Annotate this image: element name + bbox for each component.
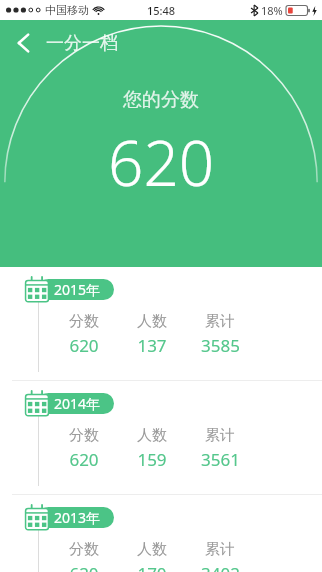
staticText: 中国移动 [45, 3, 89, 17]
staticText: 18% [261, 3, 283, 18]
staticText: 人数 [137, 540, 167, 559]
staticText: 人数 [137, 312, 167, 331]
staticText: 620 [69, 562, 99, 572]
staticText: 2013年 [54, 508, 101, 527]
button[interactable]: 2014年 [0, 381, 322, 494]
staticText: 620 [69, 334, 99, 357]
staticText: 分数 [69, 426, 99, 445]
staticText: 3402 [201, 562, 240, 572]
staticText: 3585 [201, 334, 240, 357]
staticText: 2014年 [54, 394, 101, 413]
staticText: 累计 [205, 312, 235, 331]
staticText: 您的分数 [123, 88, 199, 112]
staticText: 170 [137, 562, 167, 572]
button[interactable]: Back [0, 20, 46, 66]
staticText: 分数 [69, 312, 99, 331]
staticText: 159 [137, 448, 167, 471]
staticText: 620 [108, 120, 215, 204]
staticText: 累计 [205, 426, 235, 445]
staticText: 137 [137, 334, 167, 357]
staticText: 累计 [205, 540, 235, 559]
staticText: 一分一档 [46, 32, 118, 55]
staticText: 15:48 [147, 3, 176, 18]
staticText: 2015年 [54, 280, 101, 299]
staticText: 620 [69, 448, 99, 471]
button[interactable]: 2015年 [0, 267, 322, 380]
staticText: 3561 [201, 448, 240, 471]
staticText: 人数 [137, 426, 167, 445]
button[interactable]: 2013年 [0, 495, 322, 572]
staticText: 分数 [69, 540, 99, 559]
